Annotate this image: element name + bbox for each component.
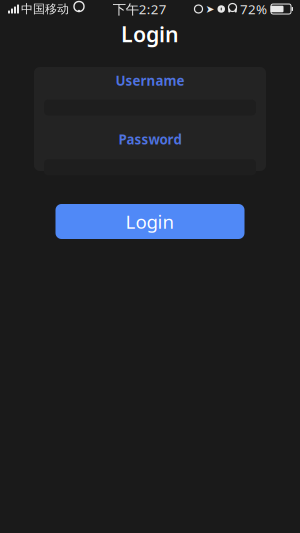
staticText: Login [125,209,174,234]
staticText: 下午2:27 [113,0,167,18]
staticText: ➤ [205,3,214,15]
staticText: Username [115,72,184,89]
button[interactable]: Login [55,204,244,239]
staticText: 72% [240,0,267,18]
staticText: Login [121,20,179,48]
staticText: Password [118,130,181,148]
staticText: 中国移动 [21,2,69,16]
